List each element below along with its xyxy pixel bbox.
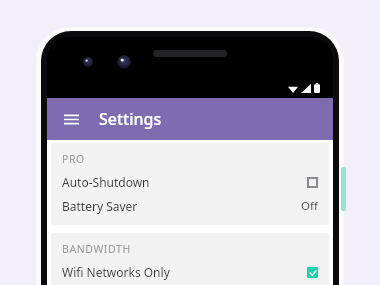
staticText: Off (301, 198, 318, 214)
button[interactable]: Auto-Shutdown (51, 170, 329, 194)
button[interactable]: Wifi Networks Only, on (307, 267, 318, 278)
other: Side button (341, 167, 346, 211)
staticText: Auto-Shutdown (62, 174, 150, 190)
staticText: PRO (62, 152, 85, 166)
button[interactable]: Wifi Networks Only (51, 260, 329, 284)
button[interactable]: Open navigation menu (56, 104, 86, 134)
button[interactable]: Battery Saver (51, 194, 329, 218)
staticText: Settings (99, 108, 162, 130)
staticText: Wifi Networks Only (62, 264, 170, 280)
staticText: Battery Saver (62, 198, 138, 214)
staticText: BANDWIDTH (62, 242, 131, 256)
button[interactable]: Auto-Shutdown, off (307, 177, 318, 188)
